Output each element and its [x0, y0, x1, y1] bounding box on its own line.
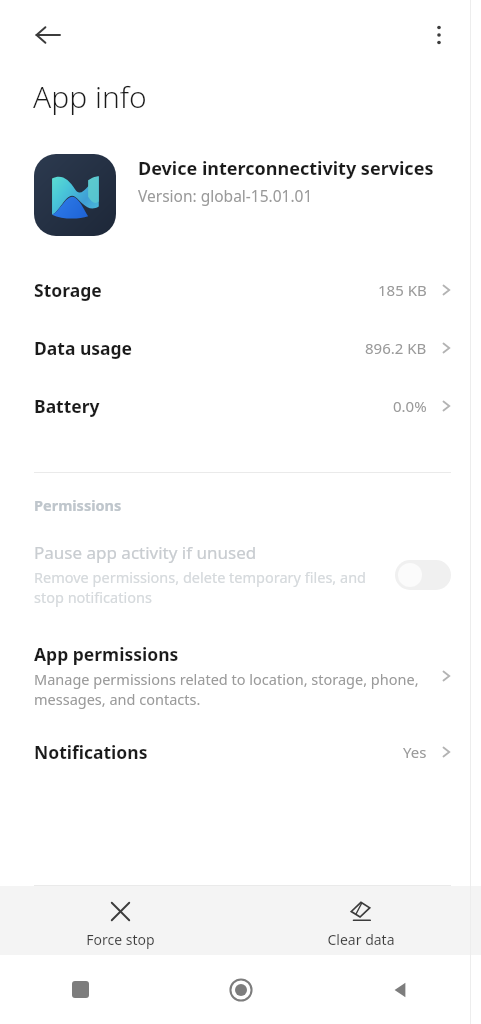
button[interactable]: Clear data [240, 886, 481, 949]
button[interactable]: Force stop [0, 886, 240, 949]
button[interactable]: Notifications [34, 740, 455, 764]
button[interactable]: Storage [34, 278, 455, 302]
button[interactable]: Battery [34, 394, 455, 418]
button[interactable]: More options [417, 13, 461, 57]
staticText: Clear data [327, 930, 395, 949]
staticText: Force stop [86, 930, 155, 949]
staticText: App permissions [34, 642, 179, 666]
staticText: 896.2 KB [365, 338, 427, 358]
staticText: Manage permissions related to location, … [34, 669, 429, 710]
staticText: Data usage [34, 336, 365, 360]
staticText: 185 KB [378, 280, 427, 300]
staticText: Battery [34, 394, 393, 418]
staticText: Remove permissions, delete temporary fil… [34, 567, 385, 608]
staticText: Storage [34, 278, 378, 302]
staticText: Yes [403, 742, 427, 762]
staticText: App info [33, 76, 147, 117]
staticText: Version: global-15.01.01 [138, 185, 313, 206]
button[interactable]: Back [26, 13, 70, 57]
button[interactable]: Device interconnectivity services [34, 154, 457, 236]
staticText: Permissions [34, 495, 122, 515]
button[interactable]: Recents [0, 955, 161, 1024]
staticText: Pause app activity if unused [34, 541, 257, 564]
staticText: Device interconnectivity services [138, 156, 434, 181]
button[interactable]: Back [321, 955, 481, 1024]
button[interactable]: App permissions [34, 642, 455, 710]
staticText: Notifications [34, 740, 403, 764]
button[interactable]: Home [161, 955, 321, 1024]
button[interactable]: Pause app activity if unused toggle [395, 560, 451, 590]
button[interactable]: Data usage [34, 336, 455, 360]
staticText: 0.0% [393, 396, 427, 416]
button[interactable]: Pause app activity if unused [34, 541, 451, 608]
